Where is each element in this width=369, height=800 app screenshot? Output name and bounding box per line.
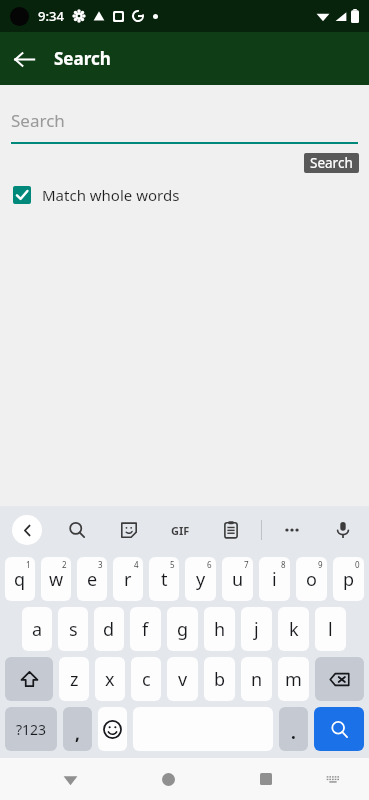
button[interactable]: Recents xyxy=(248,761,284,797)
staticText: Search xyxy=(54,47,111,70)
staticText: j xyxy=(254,617,259,642)
staticText: c xyxy=(142,667,151,692)
staticText: q xyxy=(14,567,26,592)
button[interactable]: Search xyxy=(304,153,359,173)
button[interactable]: Switch keyboard xyxy=(315,761,351,797)
staticText: 0 xyxy=(355,559,360,570)
staticText: 9 xyxy=(318,559,323,570)
button[interactable]: Home xyxy=(150,761,186,797)
staticText: n xyxy=(251,667,263,692)
staticText: r xyxy=(124,567,132,592)
button[interactable]: p xyxy=(333,557,364,601)
staticText: Search xyxy=(11,109,65,132)
button[interactable]: r xyxy=(113,557,143,601)
staticText: d xyxy=(103,617,115,642)
button[interactable]: Match whole words xyxy=(0,173,369,205)
button[interactable]: w xyxy=(41,557,71,601)
staticText: 9:34 xyxy=(38,7,64,25)
button[interactable]: Emoji xyxy=(98,707,127,751)
staticText: y xyxy=(196,567,206,592)
staticText: h xyxy=(214,617,226,642)
button[interactable]: , xyxy=(63,707,92,751)
button[interactable]: x xyxy=(95,657,125,701)
button[interactable]: Shift xyxy=(5,657,53,701)
button[interactable]: Clipboard xyxy=(217,516,245,544)
staticText: Match whole words xyxy=(42,185,180,205)
button[interactable]: v xyxy=(167,657,198,701)
button[interactable]: i xyxy=(259,557,290,601)
button[interactable]: t xyxy=(149,557,179,601)
staticText: m xyxy=(285,667,302,692)
staticText: f xyxy=(142,617,149,642)
button[interactable]: n xyxy=(241,657,272,701)
staticText: i xyxy=(272,567,277,592)
button[interactable]: g xyxy=(167,607,198,651)
button[interactable]: c xyxy=(131,657,161,701)
staticText: . xyxy=(291,721,296,744)
staticText: 2 xyxy=(62,559,67,570)
staticText: z xyxy=(70,667,79,692)
button[interactable]: Stickers xyxy=(115,516,143,544)
button[interactable]: Voice input xyxy=(329,516,357,544)
button[interactable]: Backspace xyxy=(315,657,364,701)
staticText: 8 xyxy=(281,559,286,570)
staticText: 5 xyxy=(170,559,175,570)
staticText: x xyxy=(105,667,115,692)
button[interactable]: y xyxy=(185,557,216,601)
staticText: s xyxy=(69,617,78,642)
button[interactable]: Back xyxy=(52,761,88,797)
button[interactable]: GIF xyxy=(166,516,194,544)
staticText: p xyxy=(343,567,355,592)
staticText: e xyxy=(87,567,98,592)
button[interactable]: u xyxy=(222,557,253,601)
button[interactable]: q xyxy=(5,557,35,601)
button[interactable]: More options xyxy=(278,516,306,544)
button[interactable]: f xyxy=(130,607,161,651)
staticText: 7 xyxy=(244,559,249,570)
button[interactable]: l xyxy=(315,607,346,651)
button[interactable]: ?123 xyxy=(5,707,57,751)
staticText: 1 xyxy=(26,559,31,570)
staticText: l xyxy=(328,617,333,642)
staticText: v xyxy=(178,667,188,692)
staticText: t xyxy=(161,567,168,592)
button[interactable]: b xyxy=(204,657,235,701)
button[interactable]: Search xyxy=(63,516,91,544)
button[interactable]: d xyxy=(94,607,124,651)
staticText: o xyxy=(306,567,317,592)
staticText: b xyxy=(214,667,226,692)
staticText: a xyxy=(32,617,43,642)
staticText: k xyxy=(289,617,299,642)
button[interactable]: a xyxy=(22,607,52,651)
button[interactable]: Search xyxy=(314,707,364,751)
button[interactable]: Search xyxy=(0,85,369,144)
staticText: GIF xyxy=(171,523,190,538)
staticText: 3 xyxy=(98,559,103,570)
button[interactable]: k xyxy=(278,607,309,651)
staticText: w xyxy=(49,567,64,592)
button[interactable]: m xyxy=(278,657,309,701)
button[interactable]: z xyxy=(59,657,89,701)
button[interactable]: Collapse toolbar xyxy=(12,515,42,545)
button[interactable]: . xyxy=(279,707,308,751)
staticText: g xyxy=(177,617,189,642)
staticText: Search xyxy=(310,154,353,172)
button[interactable]: h xyxy=(204,607,235,651)
staticText: , xyxy=(75,722,80,745)
staticText: 6 xyxy=(207,559,212,570)
button[interactable]: o xyxy=(296,557,327,601)
button[interactable]: Back xyxy=(0,35,48,83)
button[interactable]: e xyxy=(77,557,107,601)
staticText: 4 xyxy=(134,559,139,570)
staticText: ?123 xyxy=(16,720,47,739)
button[interactable]: s xyxy=(58,607,88,651)
staticText: u xyxy=(232,567,244,592)
button[interactable]: j xyxy=(241,607,272,651)
